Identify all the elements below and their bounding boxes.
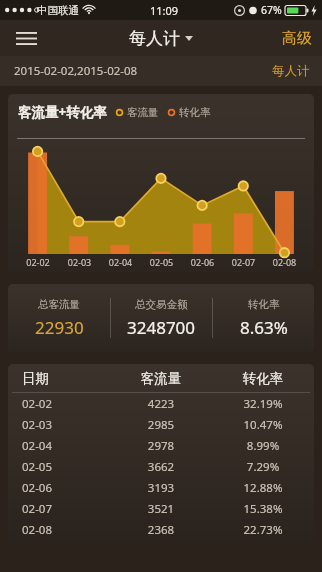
staticText: 客流量+转化率: [18, 103, 107, 121]
staticText: 02-06: [22, 480, 110, 496]
staticText: 22.73%: [212, 522, 314, 538]
staticText: 2015-02-02,2015-02-08: [14, 63, 138, 79]
staticText: 02-07: [223, 256, 264, 268]
staticText: 02-04: [100, 256, 141, 268]
staticText: 每人计: [129, 28, 180, 49]
staticText: 8.63%: [240, 316, 288, 339]
staticText: 11:09: [150, 3, 179, 18]
staticText: 22930: [35, 316, 84, 339]
staticText: 总客流量: [38, 298, 80, 311]
staticText: 02-08: [264, 256, 305, 268]
button[interactable]: 每人计: [129, 28, 193, 49]
button[interactable]: 02-06: [8, 477, 314, 498]
button[interactable]: 02-08: [8, 519, 314, 540]
staticText: 12.88%: [212, 480, 314, 496]
button[interactable]: 02-02: [8, 393, 314, 414]
staticText: 总交易金额: [135, 298, 188, 311]
button[interactable]: 每人计: [272, 63, 310, 79]
staticText: 02-03: [59, 256, 100, 268]
button[interactable]: 02-05: [8, 456, 314, 477]
staticText: 日期: [22, 370, 110, 387]
staticText: 3662: [110, 459, 212, 475]
staticText: 2368: [110, 522, 212, 538]
staticText: 02-07: [22, 501, 110, 517]
staticText: 32.19%: [212, 396, 314, 412]
button[interactable]: 02-03: [8, 414, 314, 435]
staticText: 2985: [110, 417, 212, 433]
staticText: 2978: [110, 438, 212, 454]
staticText: 客流量: [127, 106, 159, 119]
staticText: 中国联通: [37, 4, 79, 17]
button[interactable]: 02-04: [8, 435, 314, 456]
button[interactable]: 总客流量: [8, 284, 110, 352]
staticText: 每人计: [272, 63, 310, 79]
staticText: 3248700: [127, 316, 196, 339]
staticText: 02-03: [22, 417, 110, 433]
staticText: 02-08: [22, 522, 110, 538]
staticText: 02-02: [17, 256, 59, 268]
button[interactable]: 高级: [282, 29, 312, 48]
staticText: 转化率: [248, 298, 280, 311]
staticText: 02-05: [22, 459, 110, 475]
staticText: 7.29%: [212, 459, 314, 475]
staticText: 02-04: [22, 438, 110, 454]
staticText: 02-02: [22, 396, 110, 412]
staticText: 67%: [261, 3, 282, 17]
staticText: 转化率: [179, 106, 211, 119]
button[interactable]: 客流量+转化率: [8, 94, 314, 272]
staticText: 8.99%: [212, 438, 314, 454]
staticText: 3521: [110, 501, 212, 517]
staticText: 高级: [282, 29, 312, 48]
button[interactable]: Menu: [6, 22, 46, 54]
staticText: 转化率: [212, 370, 314, 387]
button[interactable]: 02-07: [8, 498, 314, 519]
button[interactable]: 总交易金额: [111, 284, 212, 352]
staticText: 3193: [110, 480, 212, 496]
staticText: 15.38%: [212, 501, 314, 517]
staticText: 02-05: [141, 256, 182, 268]
staticText: 4223: [110, 396, 212, 412]
button[interactable]: 转化率: [213, 284, 314, 352]
staticText: 10.47%: [212, 417, 314, 433]
staticText: 客流量: [110, 370, 212, 387]
staticText: 02-06: [182, 256, 223, 268]
